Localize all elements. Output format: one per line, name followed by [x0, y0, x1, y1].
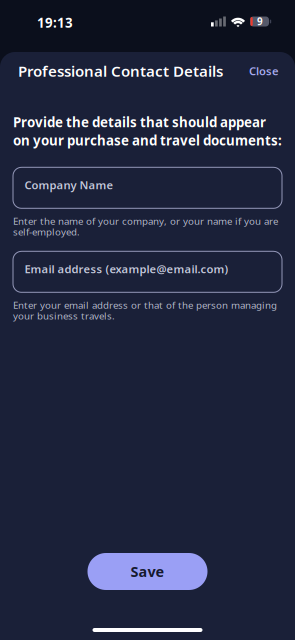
staticText: Save [130, 562, 164, 581]
staticText: your business travels. [13, 309, 115, 322]
staticText: self-employed. [13, 225, 80, 238]
staticText: Professional Contact Details [18, 61, 223, 81]
staticText: Enter the name of your company, or your … [13, 214, 278, 228]
button[interactable]: Close [237, 57, 281, 85]
staticText: 19:13 [37, 13, 73, 32]
staticText: Company Name [24, 177, 113, 192]
staticText: Email address (example@email.com) [24, 261, 228, 276]
staticText: Provide the details that should appear o… [13, 113, 282, 149]
staticText: Enter your email address or that of the … [13, 298, 277, 312]
staticText: Close [249, 63, 279, 79]
button[interactable]: Save [87, 553, 207, 590]
staticText: 9 [257, 15, 263, 28]
